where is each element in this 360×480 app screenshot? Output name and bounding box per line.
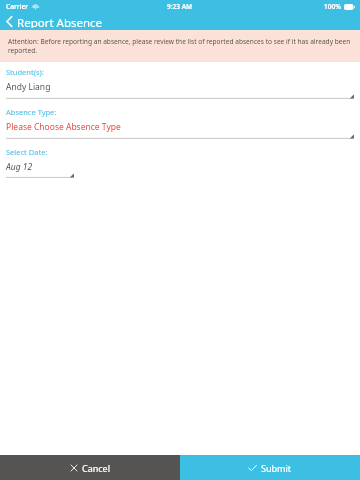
staticText: Absence Type: [6,107,57,117]
staticText: Student(s): [6,67,44,77]
staticText: Submit [261,462,292,474]
staticText: 9:23 AM [167,2,193,11]
button[interactable]: Submit [180,455,360,480]
staticText: Andy Liang [6,81,51,93]
staticText: Cancel [82,462,111,474]
other: Back [6,16,13,27]
button[interactable]: Back [0,13,111,30]
staticText: Please Choose Absence Type [6,121,121,133]
staticText: Attention: Before reporting an absence, … [8,37,352,55]
button[interactable]: Please Choose Absence Type [6,121,354,133]
staticText: Report Absence [17,15,103,28]
staticText: 100% [324,2,341,11]
staticText: Aug 12 [6,161,33,173]
button[interactable]: Cancel [0,455,180,480]
staticText: Carrier [6,2,29,11]
button[interactable]: Aug 12 [6,161,74,180]
staticText: Select Date: [6,147,48,157]
button[interactable]: Andy Liang [6,81,354,93]
